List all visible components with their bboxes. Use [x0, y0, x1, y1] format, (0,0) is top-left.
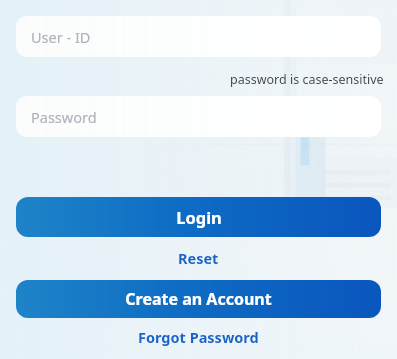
- staticText: Password: [31, 107, 97, 127]
- staticText: Login: [176, 206, 222, 228]
- button[interactable]: Create an Account: [16, 280, 381, 318]
- staticText: password is case-sensitive: [230, 71, 384, 88]
- button[interactable]: Reset: [168, 246, 229, 270]
- staticText: User - ID: [31, 27, 91, 47]
- button[interactable]: User - ID: [16, 16, 381, 57]
- button[interactable]: Login: [16, 197, 381, 237]
- button[interactable]: Forgot Password: [128, 325, 269, 349]
- staticText: Create an Account: [125, 288, 272, 310]
- staticText: Forgot Password: [138, 327, 259, 347]
- button[interactable]: Password: [16, 96, 381, 137]
- staticText: Reset: [178, 248, 219, 268]
